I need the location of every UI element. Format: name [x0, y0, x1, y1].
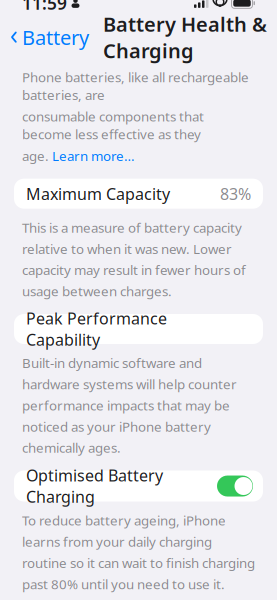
- button[interactable]: Learn more…: [52, 147, 135, 165]
- button[interactable]: Battery: [0, 18, 89, 56]
- staticText: age.: [22, 147, 52, 165]
- staticText: consumable components that become less e…: [22, 108, 204, 143]
- staticText: 83%: [220, 183, 251, 204]
- staticText: Battery Health & Charging: [103, 11, 267, 64]
- staticText: This is a measure of battery capacity re…: [22, 219, 246, 300]
- staticText: 11:59: [22, 0, 67, 15]
- staticText: Optimised Battery Charging: [26, 465, 163, 507]
- staticText: To reduce battery ageing, iPhone learns …: [22, 511, 255, 593]
- staticText: Phone batteries, like all rechargeable b…: [22, 68, 249, 103]
- staticText: Built-in dynamic software and hardware s…: [22, 354, 237, 456]
- staticText: Learn more…: [52, 147, 135, 165]
- button[interactable]: Maximum Capacity: [0, 179, 277, 209]
- staticText: Peak Performance Capability: [26, 308, 167, 350]
- staticText: Battery: [22, 24, 89, 50]
- button[interactable]: Optimised Battery Charging: [0, 470, 277, 501]
- staticText: Maximum Capacity: [26, 183, 170, 204]
- button[interactable]: Peak Performance Capability: [0, 314, 277, 344]
